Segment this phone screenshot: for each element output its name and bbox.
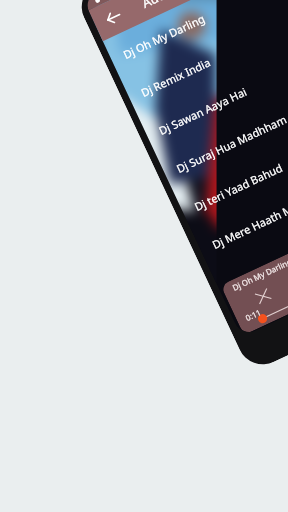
button[interactable]: Dj Oh My Darling [103, 0, 288, 79]
staticText: Dj teri Yaad Bahud [192, 160, 285, 214]
staticText: Dj Suraj Hua Madhham [174, 111, 288, 176]
staticText: Dj Oh My Darling [120, 11, 207, 62]
button[interactable]: Dj Suraj Hua Madhham [156, 64, 288, 193]
button[interactable]: Dj Mere Haath Mein [192, 140, 288, 269]
staticText: Dj Sawan Aaya Hai [156, 84, 249, 138]
staticText: Dj Oh My Darling [230, 255, 288, 293]
button[interactable]: Dj Remix India [121, 0, 288, 117]
button[interactable]: Dj Oh My Darling [220, 196, 288, 335]
staticText: Dj Remix India [138, 54, 213, 100]
button[interactable]: Dj Sawan Aaya Hai [138, 26, 288, 155]
button[interactable]: Dj teri Yaad Bahud [174, 102, 288, 231]
staticText: 0:11 [243, 306, 263, 323]
staticText: Audio Player [139, 0, 216, 12]
button[interactable]: Back [98, 1, 130, 33]
staticText: Dj Mere Haath Mein [210, 194, 288, 252]
